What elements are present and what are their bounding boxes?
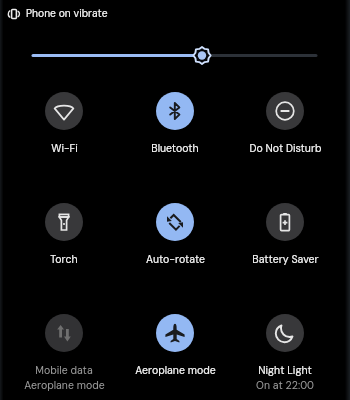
staticText: Mobile data: [35, 364, 93, 378]
staticText: Bluetooth: [151, 142, 199, 156]
staticText: Torch: [50, 253, 78, 267]
button[interactable]: Wi-Fi: [9, 92, 119, 156]
staticText: Aeroplane mode: [135, 364, 216, 378]
button[interactable]: Aeroplane mode: [120, 314, 230, 378]
staticText: On at 22:00: [256, 379, 314, 393]
button[interactable]: Night Light: [230, 314, 340, 393]
button[interactable]: Battery Saver: [230, 203, 340, 267]
button[interactable]: Brightness: [0, 44, 350, 66]
staticText: Auto-rotate: [146, 253, 205, 267]
staticText: Night Light: [258, 364, 312, 378]
staticText: Aeroplane mode: [24, 379, 105, 393]
button[interactable]: Mobile data: [9, 314, 119, 393]
button[interactable]: Bluetooth: [120, 92, 230, 156]
button[interactable]: Do Not Disturb: [230, 92, 340, 156]
button[interactable]: Phone on vibrate: [8, 7, 108, 20]
button[interactable]: Auto-rotate: [120, 203, 230, 267]
staticText: Do Not Disturb: [249, 142, 322, 156]
button[interactable]: Torch: [9, 203, 119, 267]
staticText: Wi-Fi: [51, 142, 78, 156]
staticText: Phone on vibrate: [26, 7, 108, 20]
staticText: Battery Saver: [252, 253, 319, 267]
